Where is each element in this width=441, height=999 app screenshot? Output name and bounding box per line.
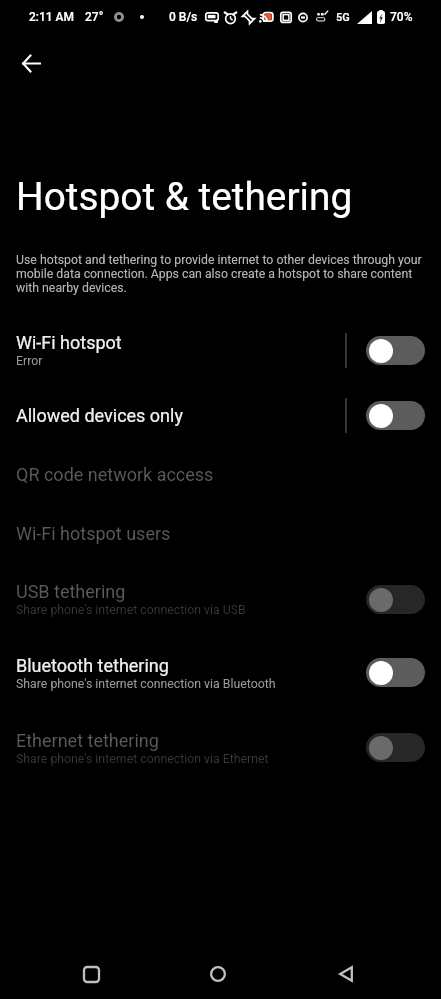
button[interactable]: Back [321, 949, 371, 999]
button[interactable]: Toggle [366, 336, 425, 365]
button[interactable]: Recent apps [66, 949, 116, 999]
button[interactable]: USB tethering [0, 563, 441, 635]
button[interactable]: Wi-Fi hotspot [0, 314, 441, 386]
staticText: 70% [390, 10, 413, 24]
button[interactable]: Ethernet tethering [0, 710, 441, 785]
button[interactable]: Toggle [366, 401, 425, 430]
staticText: Share phone's internet connection via Et… [16, 752, 269, 766]
staticText: Ethernet tethering [16, 730, 159, 751]
staticText: Wi-Fi hotspot users [16, 523, 171, 544]
staticText: USB tethering [16, 581, 126, 602]
staticText: QR code network access [16, 464, 214, 485]
button[interactable]: QR code network access [0, 445, 441, 504]
staticText: Allowed devices only [16, 405, 183, 426]
staticText: 2:11 AM [29, 10, 75, 24]
staticText: 5G [336, 11, 350, 24]
button[interactable]: Navigate up [7, 39, 55, 87]
staticText: Use hotspot and tethering to provide int… [16, 253, 429, 295]
staticText: 0 B/s [169, 10, 198, 24]
button[interactable]: Toggle [366, 585, 425, 614]
button[interactable]: Bluetooth tethering [0, 635, 441, 710]
staticText: Share phone's internet connection via Bl… [16, 677, 276, 691]
staticText: Wi-Fi hotspot [16, 332, 122, 353]
staticText: Share phone's internet connection via US… [16, 603, 246, 617]
button[interactable]: Toggle [366, 733, 425, 762]
staticText: 27° [85, 10, 104, 24]
button[interactable]: Home [193, 949, 243, 999]
button[interactable]: Allowed devices only [0, 386, 441, 445]
button[interactable]: Toggle [366, 658, 425, 687]
button[interactable]: Wi-Fi hotspot users [0, 504, 441, 563]
staticText: Error [16, 354, 43, 368]
staticText: Hotspot & tethering [16, 174, 353, 219]
staticText: Bluetooth tethering [16, 655, 169, 676]
